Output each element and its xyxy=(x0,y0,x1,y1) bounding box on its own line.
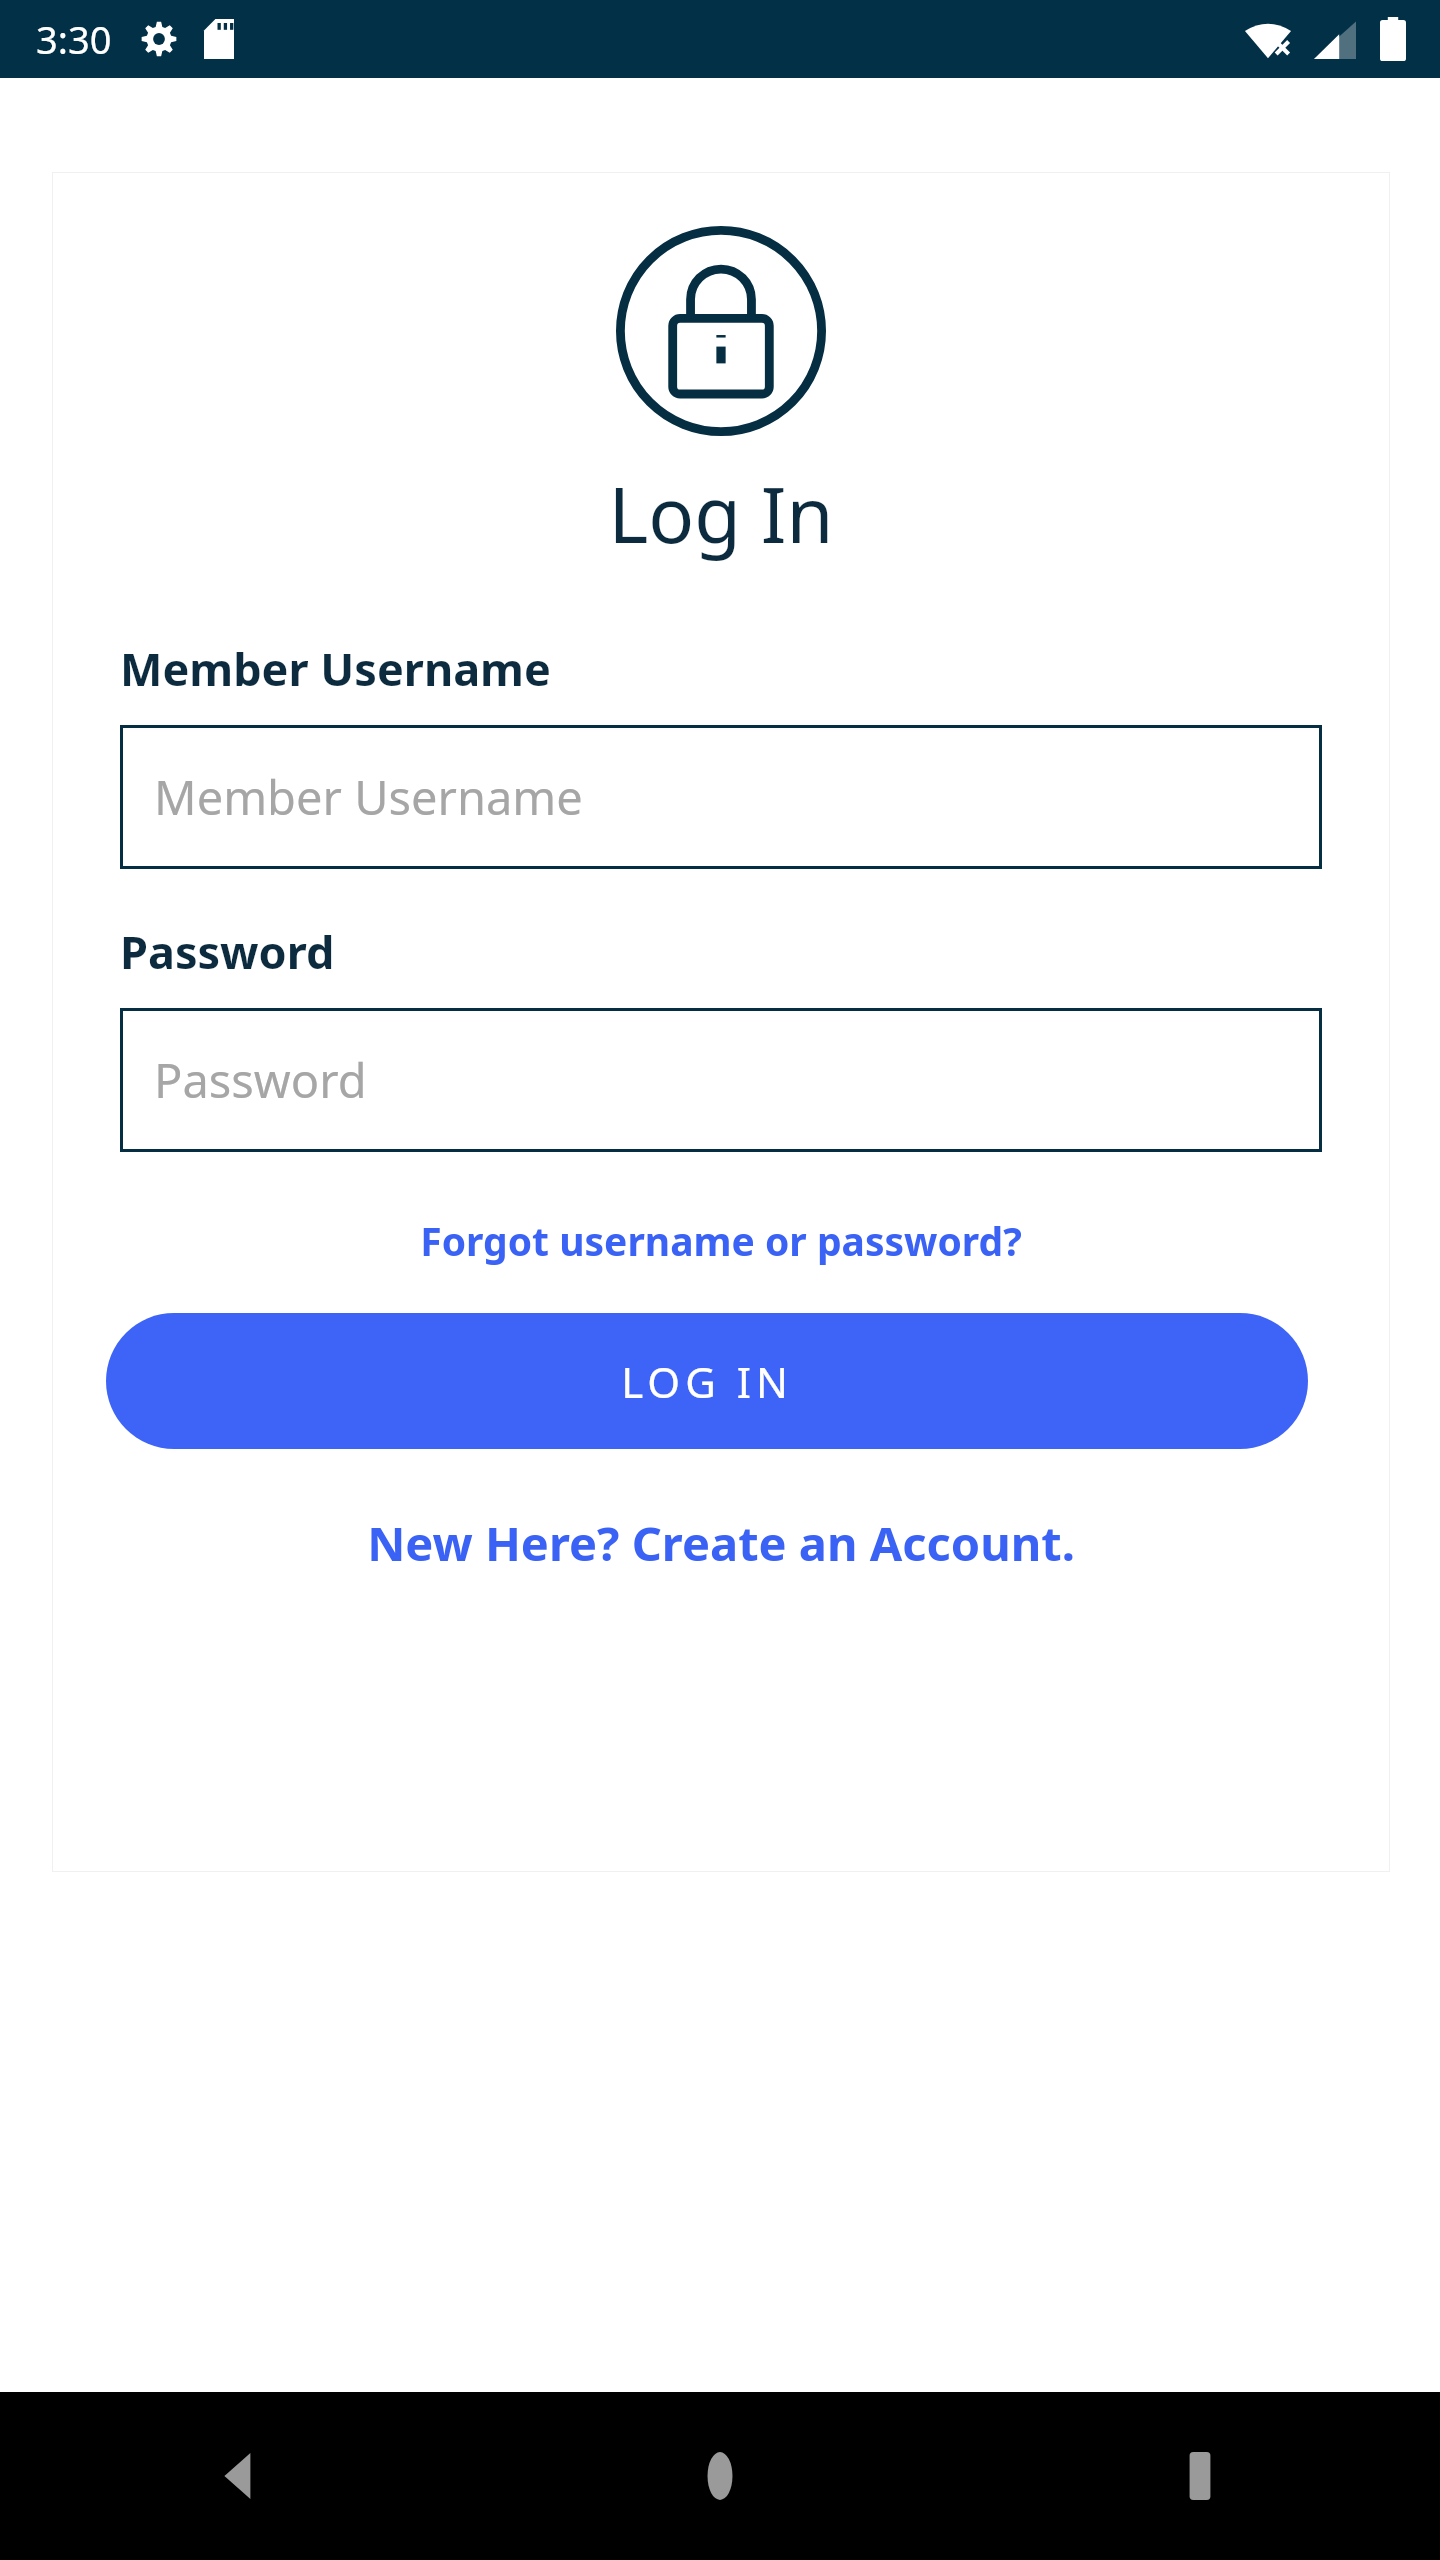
button[interactable]: Recent apps xyxy=(960,2392,1440,2560)
button[interactable]: Member Username xyxy=(120,725,1322,869)
button[interactable]: Back xyxy=(0,2392,480,2560)
button[interactable]: Forgot username or password? xyxy=(120,1214,1322,1267)
other: Secure login xyxy=(616,226,826,436)
button[interactable]: Password xyxy=(120,1008,1322,1152)
staticText: Member Username xyxy=(120,638,551,699)
staticText: Password xyxy=(154,1048,367,1112)
staticText: Forgot username or password? xyxy=(420,1214,1022,1267)
button[interactable]: New Here? Create an Account. xyxy=(120,1511,1322,1575)
staticText: Log In xyxy=(608,462,834,566)
staticText: Member Username xyxy=(154,765,583,829)
button[interactable]: LOG IN xyxy=(106,1313,1308,1449)
staticText: Password xyxy=(120,921,335,982)
staticText: 3:30 xyxy=(36,13,112,65)
button[interactable]: Home xyxy=(480,2392,960,2560)
staticText: LOG IN xyxy=(621,1353,793,1410)
staticText: New Here? Create an Account. xyxy=(367,1511,1075,1575)
